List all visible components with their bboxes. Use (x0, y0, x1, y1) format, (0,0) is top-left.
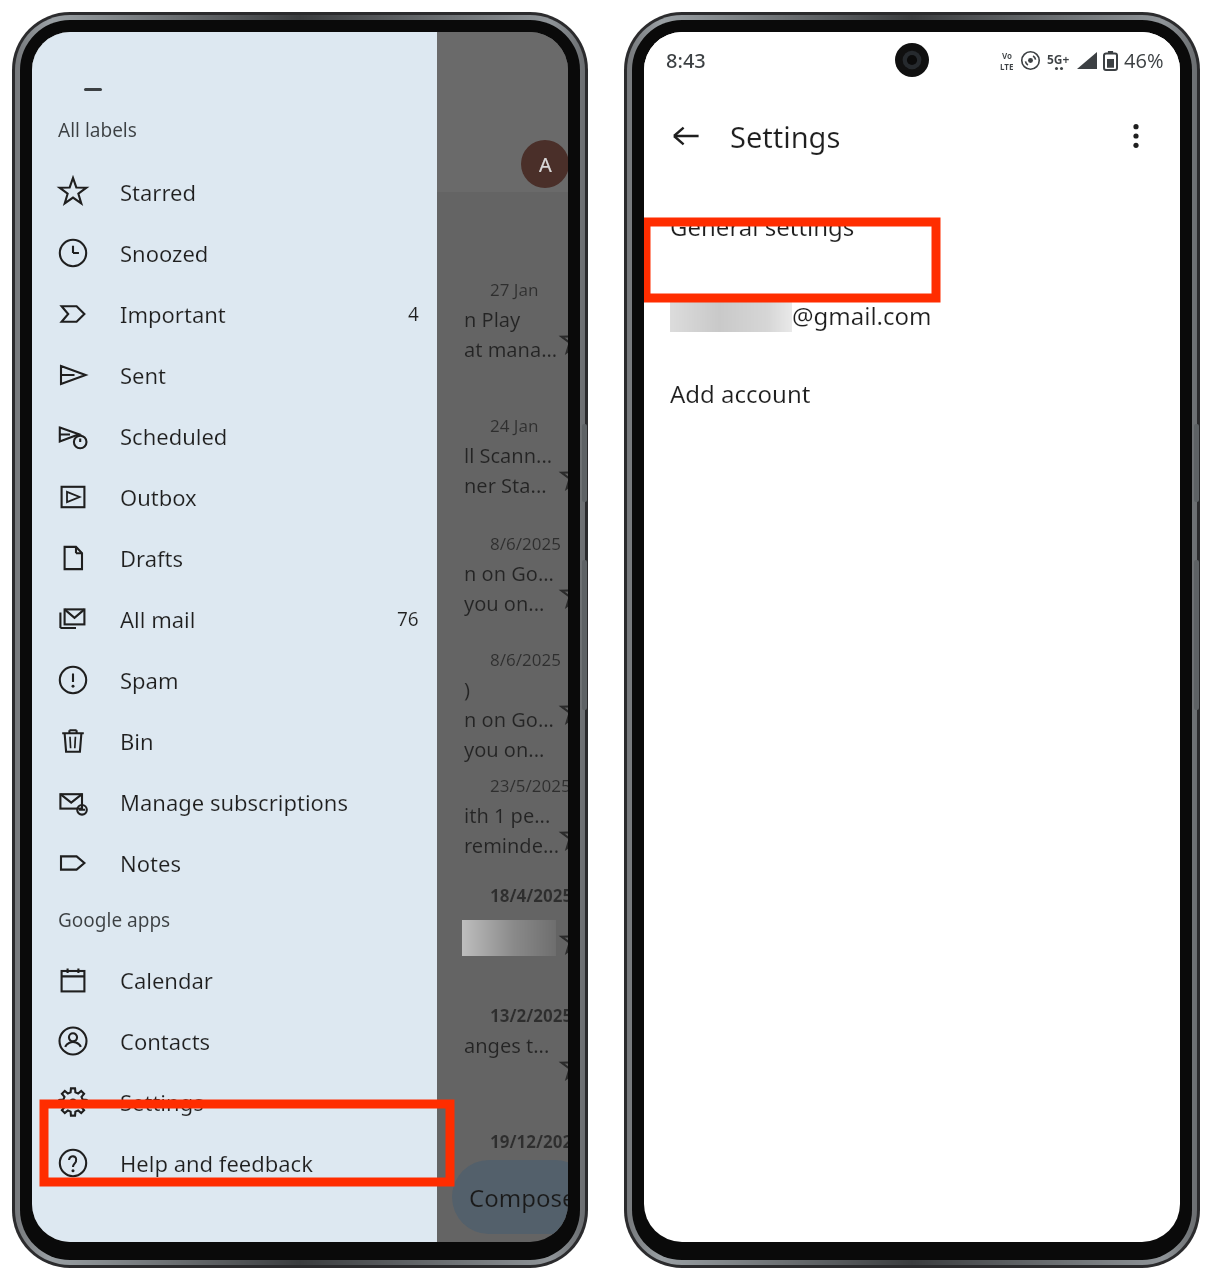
staticText: n Play (464, 306, 521, 333)
staticText: Notes (120, 848, 181, 878)
button[interactable]: Notes (32, 832, 437, 893)
staticText: at mana... (464, 336, 558, 363)
staticText: Settings (730, 117, 841, 156)
staticText: Calendar (120, 965, 213, 995)
button[interactable]: All mail (32, 588, 437, 649)
staticText: 18/4/2025 (490, 884, 568, 907)
staticText: Snoozed (120, 238, 209, 268)
button[interactable]: Manage subscriptions (32, 771, 437, 832)
button[interactable]: Scheduled (32, 405, 437, 466)
button[interactable]: Back (660, 110, 712, 162)
staticText: Bin (120, 726, 154, 756)
button[interactable]: Drafts (32, 527, 437, 588)
staticText: Settings (120, 1087, 204, 1117)
staticText: n on Go... (464, 706, 554, 733)
staticText: anges t... (464, 1032, 550, 1059)
button[interactable]: Compose (452, 1160, 568, 1234)
button[interactable]: Sent (32, 344, 437, 405)
button[interactable]: Calendar (32, 949, 437, 1010)
button[interactable]: Account (521, 140, 568, 188)
staticText: Help and feedback (120, 1148, 313, 1178)
staticText: 24 Jan (490, 414, 539, 437)
button[interactable]: Outbox (32, 466, 437, 527)
staticText: @gmail.com (792, 299, 932, 332)
staticText: Starred (120, 177, 197, 207)
button[interactable]: Snoozed (32, 222, 437, 283)
staticText: ner Sta... (464, 472, 547, 499)
staticText: Spam (120, 665, 179, 695)
staticText: 19/12/2024 (490, 1130, 568, 1153)
staticText: Google apps (58, 907, 171, 933)
staticText: 8:43 (666, 47, 706, 74)
staticText: Drafts (120, 543, 184, 573)
button[interactable]: @gmail.com (644, 287, 1180, 343)
button[interactable]: Settings (32, 1071, 437, 1132)
button[interactable]: Important (32, 283, 437, 344)
button[interactable]: Help and feedback (32, 1132, 437, 1193)
staticText: Manage subscriptions (120, 787, 349, 817)
staticText: ll Scann... (464, 442, 553, 469)
staticText: Outbox (120, 482, 197, 512)
staticText: ) (464, 676, 470, 703)
button[interactable]: Bin (32, 710, 437, 771)
staticText: 23/5/2025 (490, 774, 568, 797)
staticText: All mail (120, 604, 196, 634)
button[interactable]: Add account (644, 369, 1180, 418)
staticText: 76 (397, 606, 419, 632)
staticText: 8/6/2025 (490, 648, 561, 671)
staticText: 8/6/2025 (490, 532, 561, 555)
button[interactable]: General settings (644, 202, 1180, 251)
staticText: A (539, 151, 552, 178)
button[interactable]: Starred (32, 161, 437, 222)
staticText: Sent (120, 360, 167, 390)
staticText: n on Go... (464, 560, 554, 587)
button[interactable]: Contacts (32, 1010, 437, 1071)
button[interactable]: More options (1110, 110, 1162, 162)
staticText: 13/2/2025 (490, 1004, 568, 1027)
staticText: LTE (1000, 61, 1014, 72)
staticText: reminde... (464, 832, 560, 859)
staticText: you on... (464, 736, 545, 763)
button[interactable]: Spam (32, 649, 437, 710)
staticText: 5G+ (1047, 51, 1070, 67)
staticText: 4 (408, 301, 419, 327)
staticText: Vo (1002, 50, 1013, 61)
staticText: All labels (58, 117, 137, 143)
staticText: ith 1 pe... (464, 802, 551, 829)
staticText: Scheduled (120, 421, 228, 451)
staticText: Important (120, 299, 226, 329)
staticText: you on... (464, 590, 545, 617)
staticText: 46% (1124, 47, 1164, 74)
staticText: 27 Jan (490, 278, 539, 301)
staticText: Compose (469, 1181, 568, 1214)
staticText: Contacts (120, 1026, 211, 1056)
